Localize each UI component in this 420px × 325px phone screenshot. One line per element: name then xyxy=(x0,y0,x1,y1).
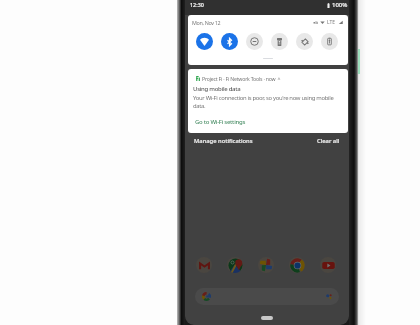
button[interactable]: Photos xyxy=(258,257,274,273)
button[interactable]: Project Fi · Fi Network Tools · now ^ xyxy=(188,69,348,133)
button[interactable]: Search xyxy=(195,288,339,305)
button[interactable]: Battery saver xyxy=(321,33,338,50)
staticText: Project Fi · Fi Network Tools · now ^ xyxy=(202,75,281,82)
staticText: 12:30 xyxy=(190,1,204,8)
staticText: Manage notifications xyxy=(194,137,253,145)
staticText: Clear all xyxy=(317,137,340,145)
staticText: 100% xyxy=(332,1,348,9)
button[interactable]: Maps xyxy=(227,257,243,273)
button[interactable]: Flashlight xyxy=(271,33,288,50)
button[interactable]: Bluetooth xyxy=(221,33,238,50)
staticText: Go to Wi-Fi settings xyxy=(195,118,246,126)
button[interactable]: Chrome xyxy=(289,257,305,273)
button[interactable]: Manage notifications xyxy=(194,137,253,145)
staticText: LTE xyxy=(327,19,336,26)
button[interactable]: Auto rotate xyxy=(296,33,313,50)
button[interactable]: Go to Wi-Fi settings xyxy=(191,115,250,129)
button[interactable]: Gmail xyxy=(196,257,212,273)
staticText: Mon, Nov 12 xyxy=(192,19,221,26)
button[interactable]: Do not disturb xyxy=(246,33,263,50)
button[interactable]: Wi-Fi xyxy=(196,33,213,50)
staticText: Using mobile data xyxy=(193,85,241,93)
button[interactable]: YouTube xyxy=(320,257,336,273)
staticText: Your Wi-Fi connection is poor, so you're… xyxy=(193,94,336,109)
button[interactable]: Clear all xyxy=(317,137,340,145)
